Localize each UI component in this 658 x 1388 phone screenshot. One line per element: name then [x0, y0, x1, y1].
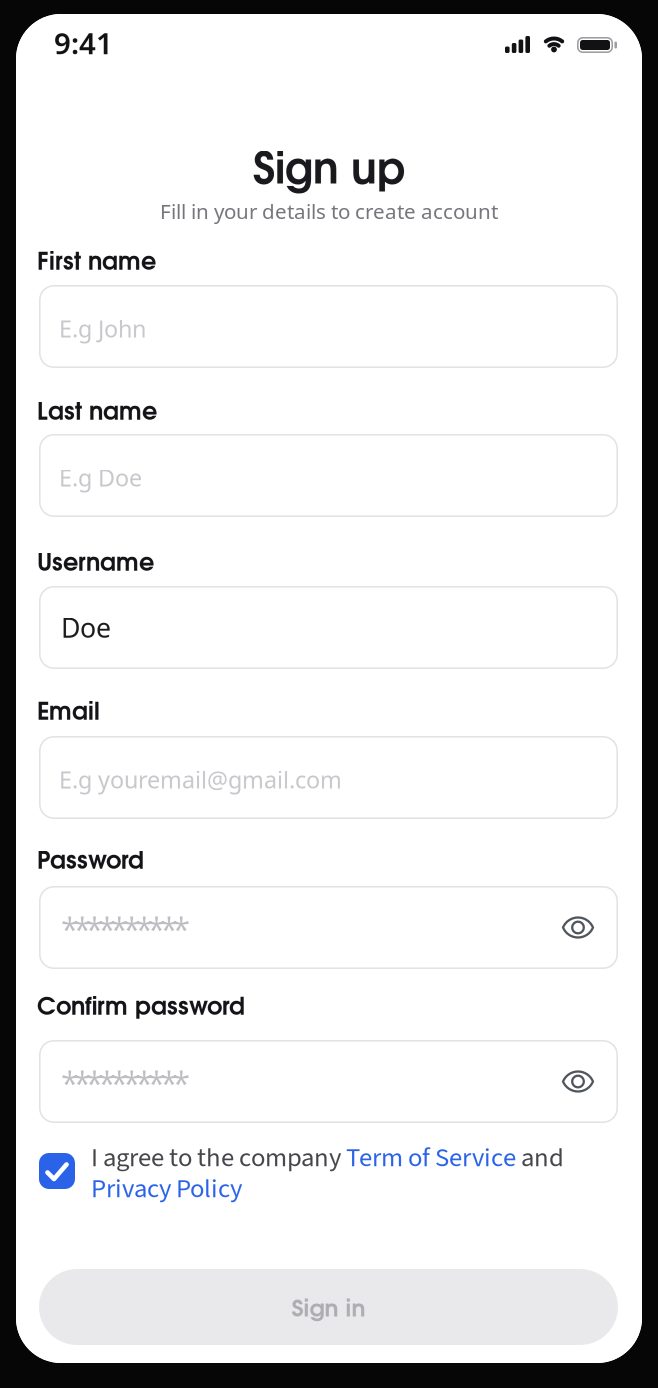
button[interactable]: E.g Doe — [39, 434, 618, 517]
button[interactable]: ********** — [39, 1040, 618, 1123]
staticText: E.g Doe — [59, 462, 142, 493]
staticText: Sign in — [291, 1299, 365, 1321]
staticText: E.g John — [59, 313, 146, 344]
button[interactable]: Sign in — [39, 1269, 618, 1345]
staticText: Doe — [61, 609, 111, 646]
staticText: Password — [37, 851, 144, 873]
button[interactable]: Term of Service — [346, 1139, 516, 1177]
staticText: E.g youremail@gmail.com — [59, 764, 342, 795]
staticText: Last name — [37, 402, 157, 424]
staticText: 9:41 — [54, 23, 113, 63]
staticText: I agree to the company — [91, 1139, 346, 1177]
button[interactable]: Show password — [562, 915, 594, 939]
staticText: and — [516, 1139, 564, 1177]
button[interactable]: Agree to terms — [39, 1153, 75, 1189]
button[interactable]: E.g youremail@gmail.com — [39, 736, 618, 819]
staticText: Sign up — [253, 152, 405, 191]
button[interactable]: E.g John — [39, 285, 618, 368]
button[interactable]: Doe — [39, 586, 618, 669]
button[interactable]: ********** — [39, 886, 618, 969]
staticText: Email — [37, 702, 100, 724]
button[interactable]: Privacy Policy — [91, 1170, 242, 1208]
staticText: Fill in your details to create account — [160, 197, 498, 225]
staticText: ********** — [61, 907, 191, 951]
staticText: Privacy Policy — [91, 1170, 242, 1208]
button[interactable]: Show confirm password — [562, 1069, 594, 1093]
staticText: Term of Service — [346, 1139, 516, 1177]
staticText: Confirm password — [37, 997, 245, 1019]
staticText: ********** — [61, 1061, 191, 1105]
staticText: First name — [37, 252, 156, 274]
staticText: Username — [37, 553, 154, 575]
